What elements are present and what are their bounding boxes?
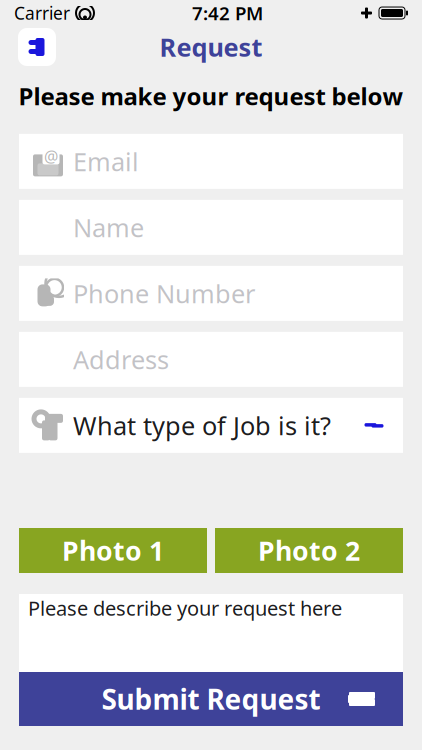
staticText: What type of Job is it? xyxy=(73,409,331,442)
staticText: Email xyxy=(73,145,139,178)
staticText: Please describe your request here xyxy=(28,595,342,621)
staticText: Address xyxy=(73,343,169,376)
button[interactable]: Please describe your request here xyxy=(19,594,403,672)
button[interactable]: Photo 1 xyxy=(19,528,207,573)
button[interactable]: Submit Request xyxy=(19,672,403,726)
staticText: Photo 2 xyxy=(258,533,360,568)
staticText: @ xyxy=(44,146,58,167)
staticText: Request xyxy=(159,30,262,64)
button[interactable]: Photo 2 xyxy=(215,528,403,573)
staticText: Submit Request xyxy=(101,680,320,718)
button[interactable]: Address xyxy=(19,332,403,387)
button[interactable]: @ xyxy=(19,134,403,189)
staticText: Name xyxy=(73,211,144,244)
button[interactable]: Name xyxy=(19,200,403,255)
staticText: Photo 1 xyxy=(62,533,164,568)
staticText: Carrier xyxy=(14,1,70,24)
button[interactable]: Back xyxy=(15,25,59,69)
staticText: Please make your request below xyxy=(18,80,403,112)
button[interactable]: What type of Job is it? xyxy=(19,398,403,453)
button[interactable]: Phone Number xyxy=(19,266,403,321)
staticText: 7:42 PM xyxy=(192,1,263,25)
staticText: Phone Number xyxy=(73,277,255,310)
